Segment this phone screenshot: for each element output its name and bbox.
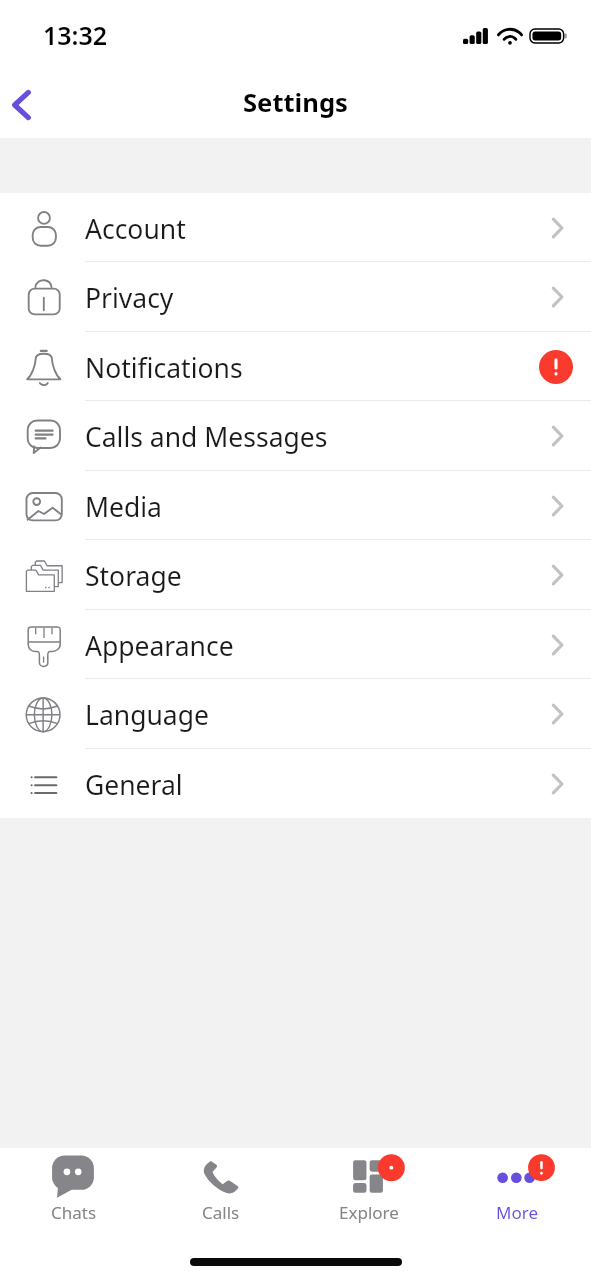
staticText: Settings <box>243 85 348 120</box>
staticText: Explore <box>339 1201 399 1224</box>
staticText: Account <box>85 211 186 247</box>
staticText: Privacy <box>85 280 174 316</box>
staticText: Notifications <box>85 350 243 386</box>
button[interactable]: Storage <box>0 540 591 610</box>
staticText: Calls <box>202 1201 240 1224</box>
button[interactable]: Media <box>0 471 591 540</box>
button[interactable]: Back <box>0 74 52 134</box>
button[interactable]: Explore <box>295 1148 443 1240</box>
staticText: Media <box>85 489 162 525</box>
staticText: Chats <box>51 1201 97 1224</box>
staticText: Appearance <box>85 628 234 664</box>
staticText: More <box>496 1201 538 1224</box>
button[interactable]: Language <box>0 679 591 749</box>
staticText: General <box>85 767 183 803</box>
staticText: Calls and Messages <box>85 419 328 455</box>
button[interactable]: Calls <box>147 1148 295 1240</box>
button[interactable]: Notifications <box>0 332 591 401</box>
staticText: 13:32 <box>43 18 108 52</box>
button[interactable]: Appearance <box>0 610 591 679</box>
button[interactable]: More <box>443 1148 591 1240</box>
button[interactable]: Chats <box>0 1148 147 1240</box>
button[interactable]: Account <box>0 193 591 262</box>
staticText: Storage <box>85 558 182 594</box>
button[interactable]: Privacy <box>0 262 591 332</box>
button[interactable]: General <box>0 749 591 818</box>
staticText: Language <box>85 697 209 733</box>
button[interactable]: Calls and Messages <box>0 401 591 471</box>
